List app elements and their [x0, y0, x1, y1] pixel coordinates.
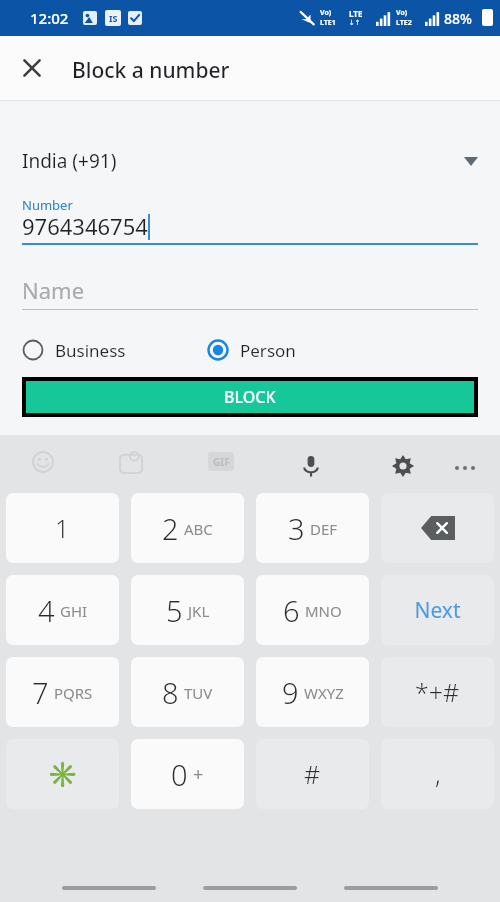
staticText: 12:02 [30, 8, 69, 28]
button[interactable]: 4 [6, 575, 119, 645]
button[interactable]: Person [207, 332, 296, 368]
staticText: + [193, 762, 204, 787]
button[interactable]: 3 [256, 493, 369, 563]
staticText: 9 [282, 673, 299, 712]
button[interactable]: Close [12, 48, 52, 88]
staticText: TUV [184, 683, 213, 703]
button[interactable]: Home [203, 886, 297, 890]
button[interactable]: *+# [381, 657, 494, 727]
button[interactable]: Business [22, 332, 126, 368]
button[interactable]: Name [0, 269, 500, 314]
staticText: LTE2 [396, 18, 412, 28]
staticText: MNO [305, 601, 342, 621]
button[interactable]: Back [344, 886, 438, 890]
staticText: *+# [415, 675, 460, 709]
staticText: 5 [166, 591, 183, 630]
button[interactable]: More options [446, 449, 484, 487]
button[interactable]: 1 [6, 493, 119, 563]
button[interactable]: 2 [131, 493, 244, 563]
staticText: 8 [162, 673, 179, 712]
staticText: India (+91) [22, 148, 117, 174]
staticText: GHI [60, 601, 88, 621]
staticText: Name [22, 275, 85, 305]
button[interactable]: Voice input [290, 445, 332, 487]
staticText: LTE1 [320, 18, 336, 28]
button[interactable]: Keyboard settings [382, 445, 424, 487]
button[interactable]: , [381, 739, 494, 809]
button[interactable]: 7 [6, 657, 119, 727]
staticText: , [435, 757, 441, 791]
staticText: Vo) [320, 8, 332, 18]
staticText: 3 [288, 509, 305, 548]
button[interactable]: ✳ [6, 739, 119, 809]
staticText: IS [109, 12, 118, 24]
button[interactable]: Next [381, 575, 494, 645]
staticText: 9764346754 [22, 211, 148, 241]
button[interactable]: 8 [131, 657, 244, 727]
staticText: 88% [444, 9, 472, 28]
staticText: 2 [162, 509, 179, 548]
button[interactable]: Backspace [381, 493, 494, 563]
staticText: BLOCK [224, 386, 276, 408]
staticText: JKL [188, 601, 210, 621]
button[interactable]: 6 [256, 575, 369, 645]
button[interactable]: 0 [131, 739, 244, 809]
staticText: Number [22, 196, 73, 214]
staticText: ABC [184, 519, 213, 539]
staticText: 7 [32, 673, 49, 712]
staticText: Person [240, 339, 296, 362]
button[interactable]: 9 [256, 657, 369, 727]
staticText: ↓↑ [349, 19, 361, 27]
staticText: 0 [171, 755, 188, 794]
button[interactable]: 9764346754 [0, 206, 500, 251]
button[interactable]: India (+91) [0, 131, 500, 191]
staticText: GIF [213, 455, 230, 469]
button[interactable]: 5 [131, 575, 244, 645]
staticText: Business [55, 339, 126, 362]
staticText: PQRS [54, 683, 93, 703]
staticText: 1 [55, 511, 70, 545]
staticText: Next [414, 596, 461, 625]
staticText: DEF [310, 519, 338, 539]
staticText: 4 [38, 591, 55, 630]
staticText: 6 [283, 591, 300, 630]
staticText: # [304, 757, 321, 791]
staticText: ✳ [47, 760, 79, 789]
staticText: Block a number [72, 56, 230, 85]
button[interactable]: BLOCK [26, 381, 474, 413]
staticText: LTE [349, 8, 363, 19]
staticText: Vo) [396, 8, 408, 18]
staticText: WXYZ [304, 683, 344, 703]
button[interactable]: Recents [62, 886, 156, 890]
button[interactable]: # [256, 739, 369, 809]
